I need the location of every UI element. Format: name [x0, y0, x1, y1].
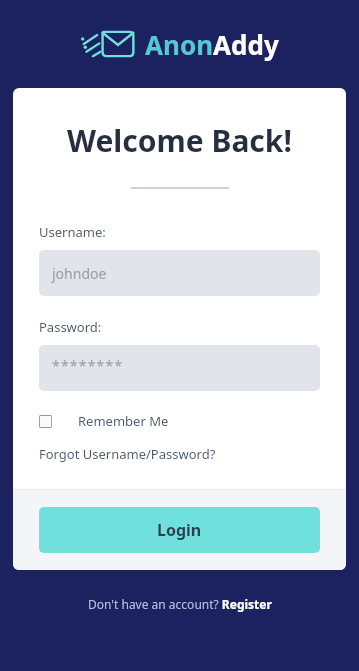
staticText: johndoe [52, 264, 107, 283]
staticText: ******** [52, 356, 124, 375]
button[interactable]: ******** [39, 345, 320, 391]
button[interactable]: Don't have an account? Register [88, 596, 272, 612]
other: AnonAddy logo [81, 28, 135, 60]
button[interactable]: Login [39, 507, 320, 553]
staticText: Login [157, 519, 202, 541]
staticText: AnonAddy [145, 27, 279, 61]
staticText: Welcome Back! [67, 120, 292, 161]
staticText: Forgot Username/Password? [39, 445, 216, 463]
button[interactable]: Remember Me [39, 409, 169, 433]
button[interactable]: johndoe [39, 250, 320, 296]
button[interactable]: Forgot Username/Password? [39, 445, 216, 463]
staticText: Don't have an account? Register [88, 596, 272, 612]
staticText: Remember Me [78, 412, 169, 430]
staticText: Username: [39, 223, 106, 241]
staticText: Password: [39, 318, 102, 336]
